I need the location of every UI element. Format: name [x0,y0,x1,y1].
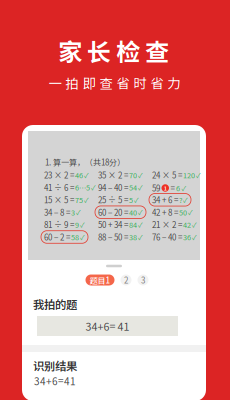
staticText: 88 − 50 = [98,231,128,243]
staticText: ✓ [138,207,143,217]
staticText: 54 [129,182,137,193]
staticText: 34+6= 41 [85,318,129,334]
staticText: ✓ [84,195,89,205]
staticText: 家长检查 [58,33,169,68]
staticText: 9 [75,219,79,230]
staticText: 6…5 [75,182,90,193]
staticText: 一拍即查 [48,73,112,93]
button[interactable]: 3 [137,274,148,285]
staticText: 15 × 5 = [44,194,74,206]
staticText: 42 + 8 = [152,206,178,218]
button[interactable]: 2 [120,274,131,285]
staticText: ✓ [134,195,139,205]
staticText: 120 [183,170,195,180]
staticText: 36 [183,232,191,242]
staticText: 34 − 8 = [44,206,70,218]
staticText: 58 [71,232,79,242]
staticText: 60 − 20 = [98,206,128,218]
staticText: ? [179,194,182,205]
staticText: 34 + 6 = [152,194,178,206]
staticText: ✓ [91,183,96,192]
staticText: ✓ [196,170,201,180]
staticText: ✓ [183,195,188,205]
staticText: 省时省力 [116,73,180,92]
staticText: ✓ [192,232,197,242]
staticText: 94 − 40 = [98,182,128,193]
staticText: 23 × 2 = [44,169,74,181]
staticText: 40 [129,207,137,217]
staticText: 84 [129,219,137,230]
staticText: ✓ [80,232,85,242]
staticText: 1. 算一算，（共18分） [45,156,125,168]
staticText: 3 [141,274,145,286]
staticText: 我拍的题 [33,296,77,312]
staticText: ✓ [76,207,81,217]
staticText: 70 [129,170,137,180]
staticText: 50 [179,207,187,217]
staticText: ✓ [138,183,143,192]
staticText: 46 [75,170,83,180]
staticText: ✓ [138,232,143,242]
button[interactable]: 题目1 [85,274,114,285]
staticText: 35 × 2 = [98,169,128,181]
staticText: 24 × 5 = [152,169,182,181]
staticText: 50 + 34 = [98,219,128,230]
staticText: 60 − 2 = [44,231,70,243]
staticText: ✓ [138,170,143,180]
staticText: ✓ [84,170,89,180]
staticText: 25 ÷ 5 = [98,194,128,206]
staticText: ✓ [80,220,85,229]
staticText: 6 [176,183,180,193]
staticText: 21 × 2 = [152,219,182,230]
staticText: 38 [129,232,137,242]
staticText: 34+6=41 [34,374,76,388]
staticText: ✓ [192,220,197,229]
staticText: 1 [164,184,167,192]
staticText: 3 [71,207,75,217]
staticText: ✓ [188,207,193,217]
staticText: 81 ÷ 9 = [44,219,74,230]
staticText: 59 [152,182,160,194]
staticText: 题目1 [89,274,110,286]
staticText: 2 [124,274,128,286]
staticText: 41 ÷ 6 = [44,182,74,193]
staticText: 76 − 40 = [152,231,182,243]
staticText: ✓ [138,220,143,229]
staticText: 识别结果 [33,357,77,374]
staticText: 75 [75,194,83,205]
staticText: = [170,182,174,194]
staticText: ✓ [181,183,186,193]
staticText: 5 [129,194,133,205]
staticText: 42 [183,219,191,230]
